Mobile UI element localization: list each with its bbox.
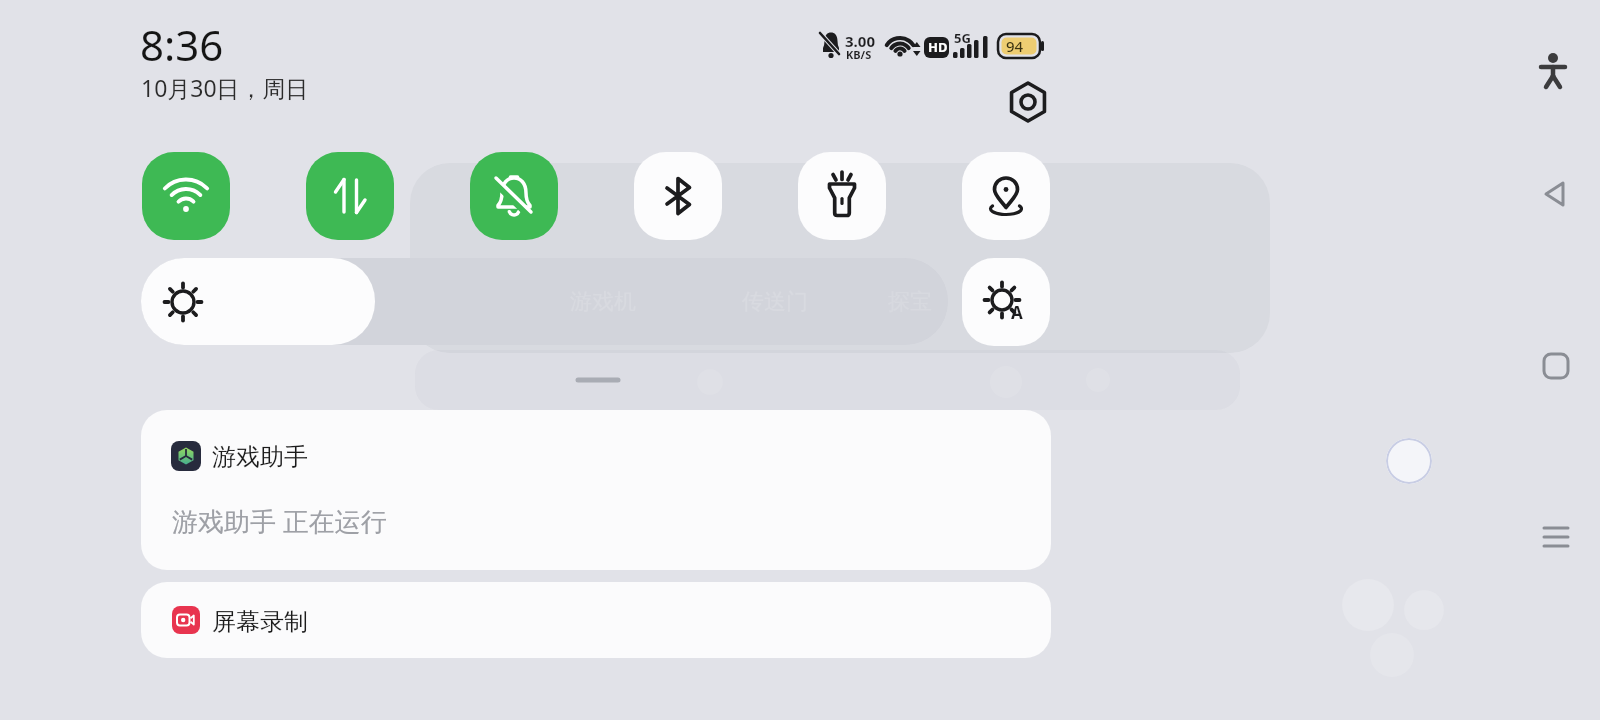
button[interactable] (634, 152, 722, 240)
button[interactable] (798, 152, 886, 240)
staticText: 5G (954, 29, 971, 47)
button[interactable] (1006, 80, 1050, 124)
button[interactable] (1538, 520, 1574, 556)
button[interactable]: 屏幕录制 (141, 582, 1051, 658)
staticText: 10月30日，周日 (141, 72, 309, 103)
staticText: HD (928, 38, 948, 56)
button[interactable] (1538, 348, 1574, 384)
button[interactable] (1538, 176, 1574, 212)
staticText: 94 (1006, 36, 1024, 56)
button[interactable] (306, 152, 394, 240)
staticText: 8:36 (140, 16, 224, 73)
staticText: 游戏助手 (212, 442, 308, 472)
button[interactable]: 游戏助手 (141, 410, 1051, 570)
button[interactable] (470, 152, 558, 240)
staticText: 3.00 (845, 31, 875, 51)
staticText: 屏幕录制 (212, 607, 308, 637)
button[interactable] (142, 152, 230, 240)
staticText: KB/S (846, 47, 872, 62)
staticText: 游戏助手 正在运行 (172, 503, 387, 539)
staticText: A (1011, 301, 1023, 324)
button[interactable] (962, 152, 1050, 240)
button[interactable] (1533, 51, 1573, 91)
button[interactable] (141, 258, 948, 345)
button[interactable]: A (962, 258, 1050, 346)
